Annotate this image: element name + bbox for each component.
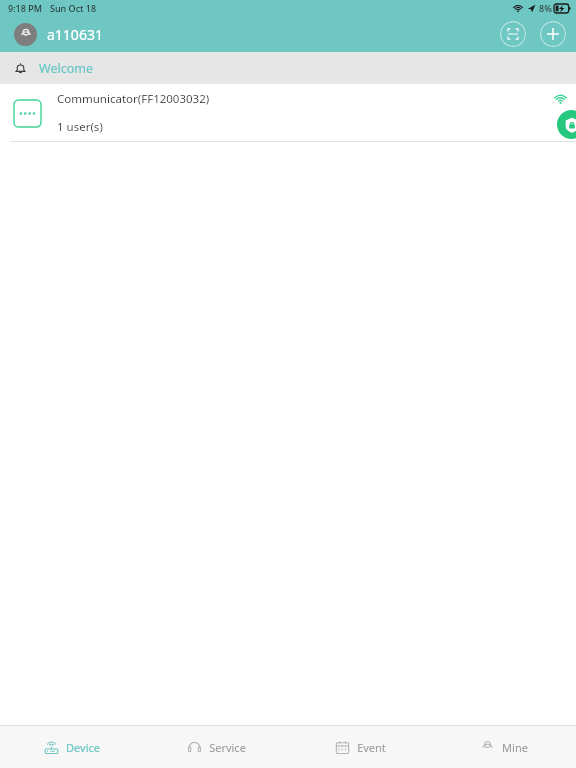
staticText: 1 user(s) xyxy=(57,119,103,135)
staticText: a110631 xyxy=(47,25,103,44)
button[interactable]: a110631 xyxy=(14,23,103,46)
staticText: 8% xyxy=(539,2,552,14)
button[interactable]: Security status xyxy=(557,110,576,139)
staticText: Service xyxy=(209,740,246,755)
staticText: Device xyxy=(66,740,100,755)
staticText: 9:18 PM xyxy=(8,2,42,14)
button[interactable]: Communicator(FF12003032) xyxy=(0,84,576,142)
staticText: Mine xyxy=(502,740,528,755)
staticText: Sun Oct 18 xyxy=(50,2,97,14)
button[interactable]: Device xyxy=(0,726,144,768)
button[interactable]: Scan QR code xyxy=(500,21,526,47)
button[interactable]: Event xyxy=(288,726,432,768)
button[interactable]: Welcome xyxy=(0,52,576,84)
button[interactable]: Add device xyxy=(540,21,566,47)
staticText: Welcome xyxy=(39,60,93,77)
staticText: Communicator(FF12003032) xyxy=(57,91,210,107)
other: Connected via Wi-Fi xyxy=(554,92,567,105)
button[interactable]: Mine xyxy=(432,726,576,768)
staticText: Event xyxy=(357,740,386,755)
button[interactable]: Service xyxy=(144,726,288,768)
